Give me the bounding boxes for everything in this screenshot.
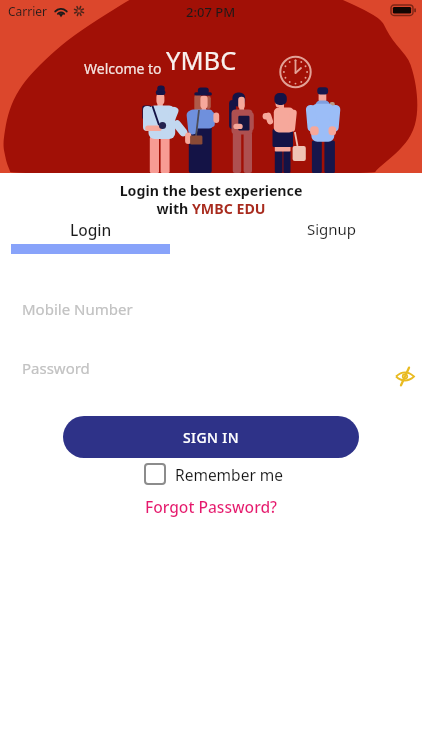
staticText: Login the best experience (0, 181, 422, 200)
staticText: Password (22, 358, 90, 378)
staticText: SIGN IN (183, 428, 239, 447)
staticText: Welcome to (84, 59, 166, 78)
staticText: Remember me (175, 464, 284, 485)
staticText: YMBC (166, 43, 237, 78)
staticText: Forgot Password? (145, 496, 278, 517)
staticText: Mobile Number (22, 299, 133, 319)
button[interactable]: Forgot Password? (0, 494, 422, 518)
staticText: Login (70, 219, 112, 240)
button[interactable]: Show password (391, 362, 419, 390)
staticText: 2:07 PM (186, 3, 236, 21)
button[interactable]: Login (41, 217, 141, 241)
button[interactable]: Mobile Number (12, 287, 410, 323)
staticText: with YMBC EDU (0, 199, 422, 218)
button[interactable]: Remember me (144, 462, 284, 486)
staticText: Carrier (8, 3, 48, 19)
staticText: Signup (307, 219, 357, 239)
button[interactable]: Password (12, 346, 410, 382)
button[interactable]: Signup (282, 217, 382, 241)
button[interactable]: SIGN IN (63, 416, 359, 458)
